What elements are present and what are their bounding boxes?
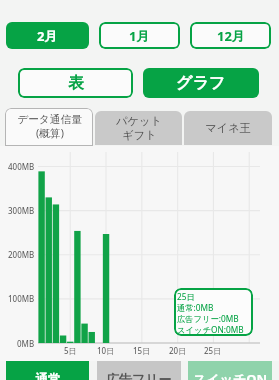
staticText: 100MB	[8, 293, 35, 304]
button[interactable]: 1月	[99, 22, 180, 49]
staticText: (概算)	[36, 126, 64, 141]
button[interactable]: グラフ	[143, 68, 259, 98]
staticText: 0MB	[17, 338, 35, 349]
staticText: 5日	[64, 345, 77, 356]
staticText: 広告フリー	[106, 371, 172, 380]
staticText: 300MB	[8, 205, 35, 216]
button[interactable]: データ通信量	[5, 108, 93, 146]
button[interactable]: パケット	[95, 111, 182, 145]
staticText: 400MB	[8, 161, 35, 172]
staticText: 1月	[129, 27, 150, 45]
staticText: 20日	[169, 345, 187, 356]
staticText: 広告フリー:0MB	[177, 313, 239, 324]
button[interactable]: 25日	[174, 288, 253, 336]
staticText: グラフ	[176, 73, 226, 93]
button[interactable]: 通常	[6, 361, 89, 380]
staticText: データ通信量	[17, 113, 82, 126]
staticText: スイッチON	[193, 370, 268, 380]
button[interactable]: スイッチON	[188, 361, 272, 380]
staticText: 15日	[133, 345, 151, 356]
staticText: 25日	[204, 345, 222, 356]
button[interactable]: 広告フリー	[97, 361, 181, 380]
staticText: マイネ王	[205, 121, 251, 135]
staticText: 200MB	[8, 249, 35, 260]
staticText: 12月	[217, 27, 245, 45]
button[interactable]: 表	[18, 68, 133, 98]
button[interactable]: 12月	[190, 22, 271, 49]
staticText: 25日	[177, 291, 195, 302]
staticText: 2月	[37, 27, 58, 45]
staticText: 10日	[97, 345, 115, 356]
staticText: パケット	[116, 114, 162, 128]
staticText: スイッチON:0MB	[177, 324, 244, 335]
staticText: 通常:0MB	[177, 302, 214, 313]
button[interactable]: 2月	[6, 22, 89, 49]
staticText: 通常	[35, 371, 61, 380]
button[interactable]: マイネ王	[184, 111, 272, 145]
staticText: ギフト	[122, 128, 157, 142]
staticText: 表	[68, 73, 84, 93]
